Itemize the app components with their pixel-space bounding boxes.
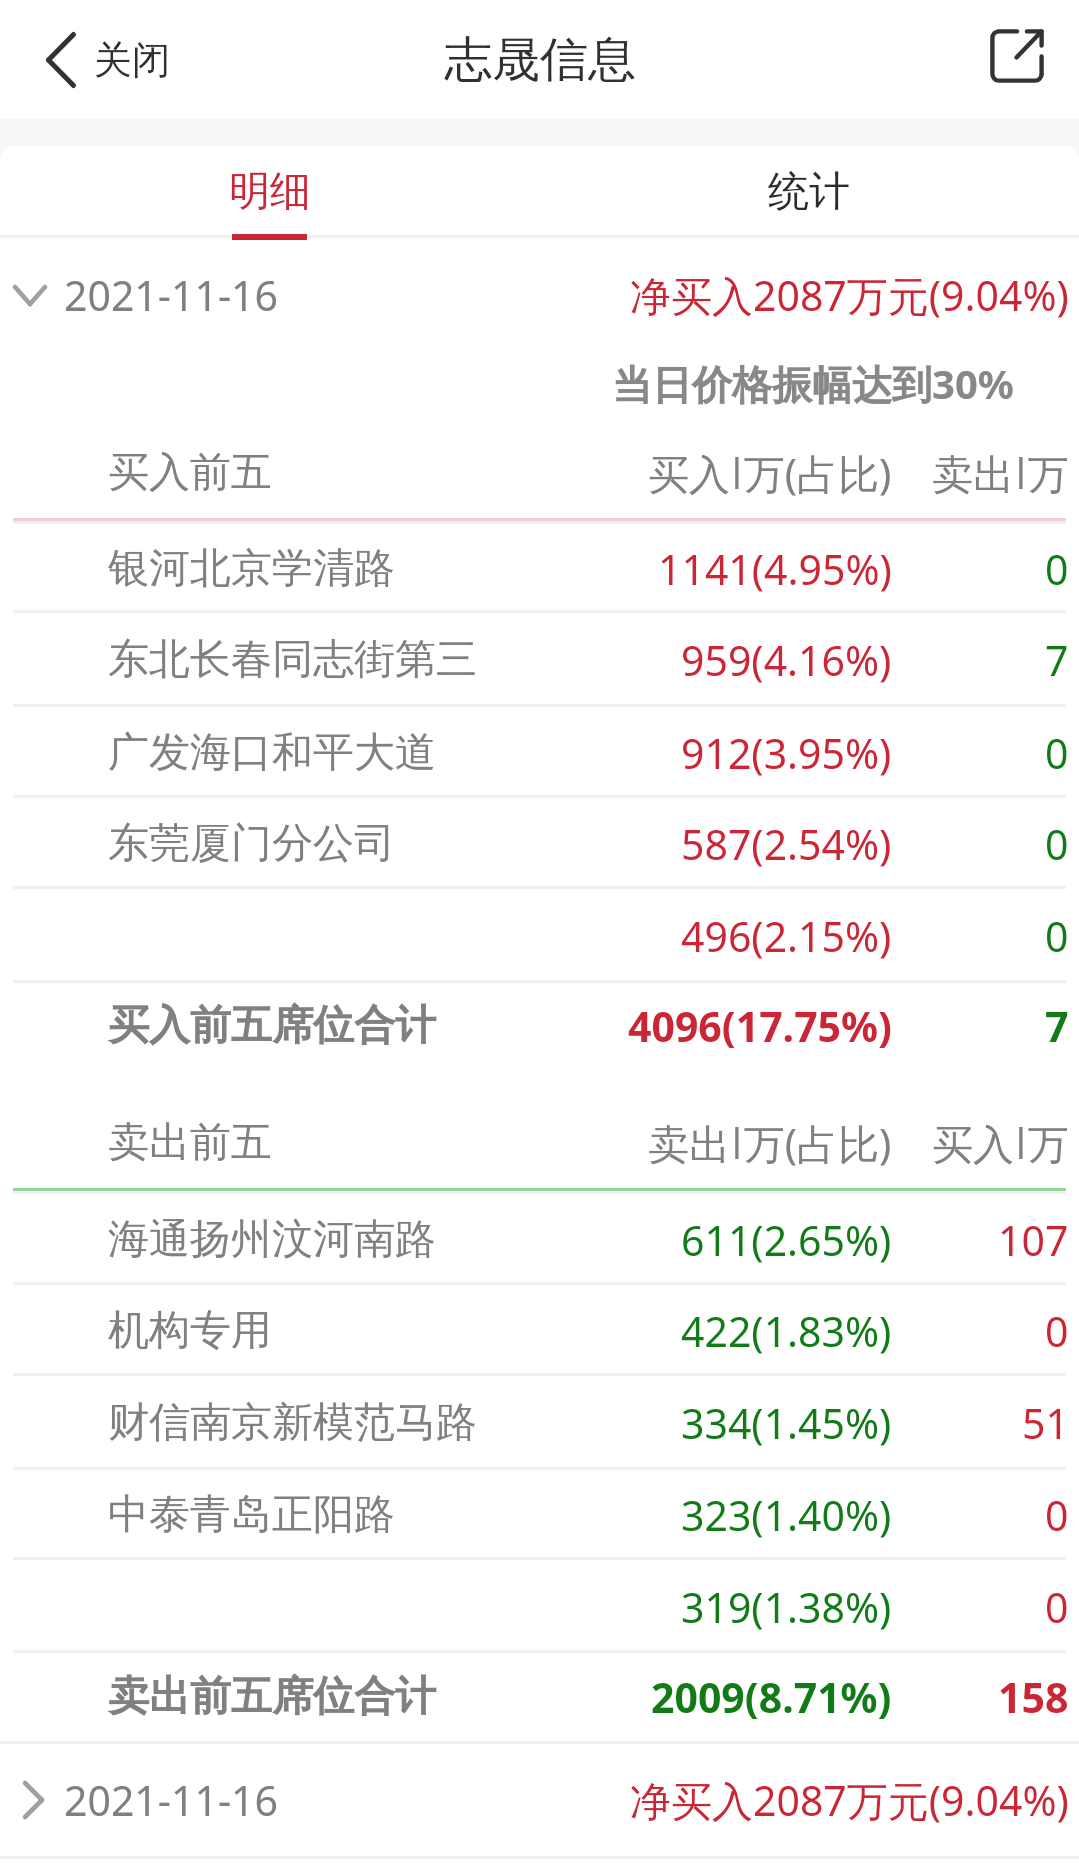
- button[interactable]: 东莞厦门分公司: [0, 798, 1079, 889]
- staticText: 7: [1045, 632, 1069, 688]
- staticText: 卖出ǀ万(占比): [648, 1115, 892, 1171]
- staticText: 7: [1045, 998, 1069, 1054]
- staticText: 0: [1045, 1303, 1069, 1359]
- staticText: 4096(17.75%): [628, 998, 892, 1054]
- staticText: 0: [1045, 541, 1069, 597]
- staticText: 银河北京学清路: [108, 543, 395, 595]
- staticText: 海通扬州汶河南路: [108, 1214, 436, 1266]
- staticText: 明细: [229, 166, 311, 218]
- staticText: 统计: [768, 166, 850, 218]
- button[interactable]: 银河北京学清路: [0, 524, 1079, 613]
- staticText: 0: [1045, 816, 1069, 872]
- staticText: 0: [1045, 1487, 1069, 1543]
- button[interactable]: 关闭: [0, 18, 194, 102]
- staticText: 买入ǀ万(占比): [648, 445, 892, 501]
- staticText: 158: [998, 1669, 1069, 1725]
- staticText: 机构专用: [108, 1305, 272, 1357]
- staticText: 当日价格振幅达到30%: [612, 356, 1014, 411]
- staticText: 2021-11-16: [64, 1772, 279, 1828]
- staticText: 卖出前五: [108, 1117, 272, 1169]
- button[interactable]: Open in new window: [963, 2, 1071, 110]
- button[interactable]: 2021-11-16: [0, 251, 1079, 339]
- staticText: 财信南京新模范马路: [108, 1397, 477, 1449]
- staticText: 496(2.15%): [681, 908, 892, 964]
- staticText: 959(4.16%): [681, 632, 892, 688]
- staticText: 611(2.65%): [681, 1212, 892, 1268]
- staticText: 0: [1045, 725, 1069, 781]
- staticText: 323(1.40%): [681, 1487, 892, 1543]
- staticText: 净买入2087万元(9.04%): [630, 1772, 1069, 1828]
- staticText: 广发海口和平大道: [108, 727, 436, 779]
- button[interactable]: 2021-11-16: [0, 1744, 1079, 1856]
- button[interactable]: 财信南京新模范马路: [0, 1376, 1079, 1470]
- staticText: 买入前五席位合计: [108, 1000, 436, 1052]
- staticText: 2021-11-16: [64, 267, 279, 323]
- staticText: 净买入2087万元(9.04%): [630, 267, 1069, 323]
- staticText: 东莞厦门分公司: [108, 818, 395, 870]
- button[interactable]: 319(1.38%): [0, 1560, 1079, 1653]
- staticText: 志晟信息: [444, 30, 636, 90]
- button[interactable]: 卖出前五: [0, 1098, 1079, 1188]
- button[interactable]: 卖出前五席位合计: [0, 1653, 1079, 1741]
- button[interactable]: 买入前五: [0, 427, 1079, 518]
- button[interactable]: 统计: [539, 146, 1079, 240]
- staticText: 卖出前五席位合计: [108, 1671, 436, 1723]
- staticText: 关闭: [94, 36, 170, 84]
- button[interactable]: 广发海口和平大道: [0, 707, 1079, 798]
- button[interactable]: 买入前五席位合计: [0, 983, 1079, 1068]
- staticText: 334(1.45%): [681, 1395, 892, 1451]
- staticText: 51: [1022, 1395, 1069, 1451]
- button[interactable]: 明细: [0, 146, 539, 240]
- staticText: 587(2.54%): [681, 816, 892, 872]
- button[interactable]: 东北长春同志街第三: [0, 613, 1079, 707]
- staticText: 买入前五: [108, 447, 272, 499]
- staticText: 卖出ǀ万: [932, 445, 1069, 501]
- staticText: 0: [1045, 1579, 1069, 1635]
- staticText: 319(1.38%): [681, 1579, 892, 1635]
- staticText: 107: [998, 1212, 1069, 1268]
- staticText: 0: [1045, 908, 1069, 964]
- staticText: 912(3.95%): [681, 725, 892, 781]
- button[interactable]: 海通扬州汶河南路: [0, 1194, 1079, 1285]
- button[interactable]: 496(2.15%): [0, 889, 1079, 983]
- staticText: 422(1.83%): [681, 1303, 892, 1359]
- staticText: 东北长春同志街第三: [108, 634, 477, 686]
- staticText: 2009(8.71%): [651, 1669, 892, 1725]
- button[interactable]: 机构专用: [0, 1285, 1079, 1376]
- staticText: 1141(4.95%): [658, 541, 892, 597]
- staticText: 中泰青岛正阳路: [108, 1489, 395, 1541]
- staticText: 买入ǀ万: [932, 1115, 1069, 1171]
- button[interactable]: 中泰青岛正阳路: [0, 1470, 1079, 1560]
